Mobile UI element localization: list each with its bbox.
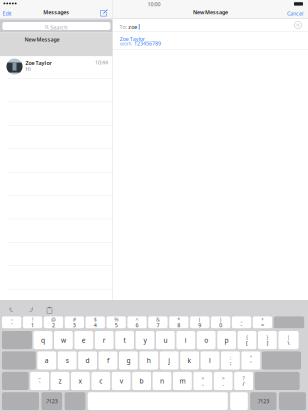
staticText: z [58,376,61,385]
button[interactable] [274,316,304,328]
button[interactable]: b [132,372,151,390]
button[interactable]: Undo [9,305,16,313]
button[interactable]: f [99,351,117,369]
button[interactable]: @ [44,316,63,328]
button[interactable]: _ [232,316,251,328]
button[interactable]: Paste [45,305,52,313]
button[interactable]: ~ [2,316,21,328]
staticText: r [103,336,106,344]
button[interactable]: m [173,372,192,390]
button[interactable]: w [54,331,73,349]
staticText: . [223,380,224,387]
button[interactable]: v [112,372,131,390]
button[interactable]: ) [211,316,230,328]
button[interactable]: ^ [127,316,147,328]
button[interactable]: Edit [0,0,12,10]
button[interactable] [230,392,248,410]
button[interactable]: : [221,351,240,369]
staticText: : [230,354,231,361]
staticText: 0 [219,321,222,329]
button[interactable]: Zoe Taylor [113,0,308,17]
staticText: + [261,316,264,323]
staticText: work [120,40,132,47]
staticText: a [45,356,49,365]
staticText: Search [50,24,67,31]
staticText: * [177,316,180,323]
button[interactable]: g [119,351,138,369]
button[interactable] [2,372,29,390]
button[interactable]: c [91,372,110,390]
button[interactable]: u [156,331,175,349]
button[interactable]: s [58,351,77,369]
button[interactable] [2,351,36,369]
button[interactable]: Redo [27,305,34,313]
staticText: ` [39,380,40,387]
staticText: o [204,336,208,344]
button[interactable]: h [139,351,158,369]
button[interactable]: y [136,331,154,349]
button[interactable]: } [258,331,277,349]
button[interactable]: a [37,351,56,369]
button[interactable]: & [148,316,168,328]
button[interactable]: l [201,351,219,369]
staticText: Zoe Taylor [25,59,51,67]
button[interactable]: z [51,372,69,390]
staticText: 6 [136,321,139,329]
staticText: x [78,376,82,385]
button[interactable]: New Message [0,0,12,11]
staticText: < [201,375,204,382]
button[interactable]: ~ [30,372,49,390]
button[interactable]: | [278,331,299,349]
staticText: ( [199,316,201,323]
button[interactable]: { [238,331,256,349]
button[interactable]: i [176,331,195,349]
button[interactable]: x [71,372,90,390]
staticText: / [243,380,245,387]
button[interactable] [262,351,301,369]
staticText: d [86,356,90,365]
staticText: Messages [43,9,69,16]
staticText: ) [220,316,222,323]
staticText: @ [51,316,56,323]
staticText: % [114,316,118,323]
button[interactable]: > [214,372,233,390]
staticText: { [246,334,248,341]
staticText: New Message [25,36,60,43]
staticText: \ [287,339,289,346]
button[interactable]: r [95,331,114,349]
button[interactable]: q [34,331,52,349]
button[interactable]: ? [234,372,253,390]
button[interactable]: e [74,331,93,349]
button[interactable]: .?123 [41,392,62,410]
button[interactable]: New Message [0,0,112,24]
button[interactable]: $ [86,316,105,328]
button[interactable]: p [217,331,236,349]
button[interactable]: .?123 [250,392,276,410]
button[interactable]: % [106,316,126,328]
staticText: 1 [31,321,34,329]
button[interactable]: t [115,331,134,349]
staticText: ~ [10,316,13,323]
button[interactable]: n [153,372,171,390]
button[interactable]: " [241,351,260,369]
button[interactable]: d [78,351,97,369]
button[interactable]: < [193,372,212,390]
button[interactable]: * [169,316,188,328]
button[interactable]: # [65,316,84,328]
button[interactable]: Zoe Taylor [0,0,112,22]
button[interactable]: ( [190,316,209,328]
button[interactable]: k [180,351,199,369]
button[interactable]: + [253,316,272,328]
button[interactable]: j [160,351,179,369]
button[interactable]: o [197,331,216,349]
button[interactable]: ! [23,316,42,328]
staticText: g [126,356,130,365]
